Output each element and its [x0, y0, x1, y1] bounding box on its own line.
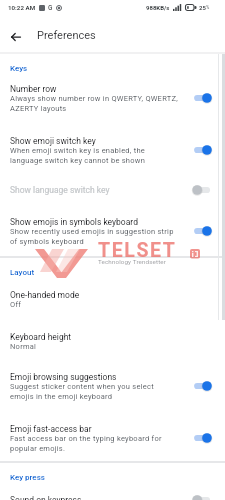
staticText: Normal [10, 342, 37, 351]
button[interactable]: Sound on keypress [0, 495, 225, 500]
staticText: Preferences [37, 29, 96, 42]
staticText: Keys [10, 64, 28, 73]
button[interactable]: Toggle Show emoji switch key [191, 142, 215, 158]
button[interactable]: Toggle Number row [191, 90, 215, 106]
button[interactable]: Emoji browsing suggestions [0, 372, 225, 401]
staticText: 25 [199, 4, 206, 11]
staticText: 10:22 AM [8, 4, 36, 11]
staticText: Show emojis in symbols keyboard [10, 217, 138, 227]
staticText: G [48, 4, 53, 12]
staticText: Sound on keypress [10, 495, 82, 500]
staticText: Key press [10, 473, 45, 482]
staticText: Show emoji switch key [10, 136, 96, 146]
button[interactable]: Keyboard height [0, 332, 225, 351]
staticText: % [206, 5, 210, 10]
staticText: Emoji browsing suggestions [10, 372, 117, 382]
button[interactable]: Toggle Sound on keypress [191, 492, 215, 500]
staticText: TELSET [98, 239, 177, 262]
staticText: Show recently used emojis in suggestion … [10, 227, 174, 246]
staticText: When emoji switch key is enabled, the la… [10, 146, 146, 165]
button[interactable]: Show language switch key [0, 185, 225, 195]
staticText: Emoji fast-access bar [10, 424, 92, 434]
staticText: Show language switch key [10, 185, 110, 195]
staticText: 988KB/s [146, 4, 170, 11]
button[interactable]: Toggle Emoji fast-access bar [191, 430, 215, 446]
staticText: Technology Trendsetter [98, 258, 167, 265]
staticText: Suggest sticker content when you select … [10, 382, 154, 401]
button[interactable]: Number row [0, 84, 225, 113]
button[interactable]: One-handed mode [0, 290, 225, 309]
staticText: Keyboard height [10, 332, 72, 342]
staticText: Number row [10, 84, 57, 94]
button[interactable]: Emoji fast-access bar [0, 424, 225, 453]
staticText: Off [10, 300, 22, 309]
staticText: Fast access bar on the typing keyboard f… [10, 434, 162, 453]
button[interactable]: Toggle Emoji browsing suggestions [191, 378, 215, 394]
button[interactable]: Show emojis in symbols keyboard [0, 217, 225, 246]
button[interactable]: Toggle Show language switch key [191, 182, 215, 198]
staticText: One-handed mode [10, 290, 80, 300]
button[interactable]: Show emoji switch key [0, 136, 225, 165]
button[interactable]: Back [6, 27, 26, 47]
staticText: Always show number row in QWERTY, QWERTZ… [10, 94, 178, 113]
button[interactable]: Toggle Show emojis in symbols keyboard [191, 223, 215, 239]
staticText: Layout [10, 268, 35, 277]
